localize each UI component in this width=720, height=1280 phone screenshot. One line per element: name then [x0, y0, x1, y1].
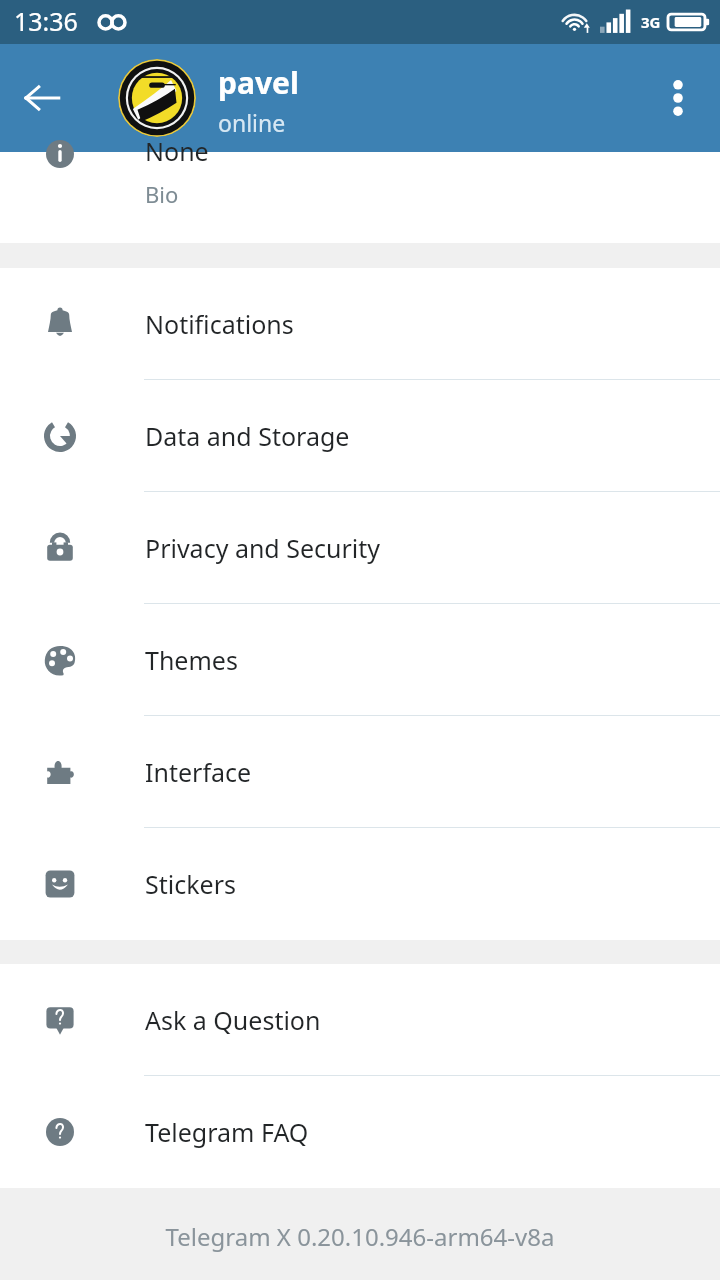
button[interactable]: Themes: [0, 604, 720, 716]
button[interactable]: More options: [636, 56, 720, 140]
staticText: Themes: [145, 643, 238, 677]
button[interactable]: Back: [0, 56, 84, 140]
button[interactable]: Stickers: [0, 828, 720, 940]
staticText: Interface: [145, 755, 252, 789]
staticText: None: [145, 134, 209, 168]
staticText: Privacy and Security: [145, 531, 381, 565]
staticText: Telegram X 0.20.10.946-arm64-v8a: [0, 1220, 720, 1253]
button[interactable]: Telegram FAQ: [0, 1076, 720, 1188]
staticText: online: [218, 107, 286, 138]
button[interactable]: None: [0, 152, 720, 243]
button[interactable]: Profile photo: [118, 59, 196, 137]
staticText: Ask a Question: [145, 1003, 321, 1037]
button[interactable]: Data and Storage: [0, 380, 720, 492]
button[interactable]: Privacy and Security: [0, 492, 720, 604]
staticText: Stickers: [145, 867, 236, 901]
staticText: Notifications: [145, 307, 294, 341]
staticText: Bio: [145, 179, 179, 209]
button[interactable]: Ask a Question: [0, 964, 720, 1076]
staticText: Data and Storage: [145, 419, 350, 453]
button[interactable]: Notifications: [0, 268, 720, 380]
staticText: 13:36: [14, 4, 78, 38]
staticText: 3G: [641, 12, 661, 32]
button[interactable]: Interface: [0, 716, 720, 828]
staticText: Telegram FAQ: [145, 1115, 309, 1149]
staticText: pavel: [218, 62, 299, 103]
